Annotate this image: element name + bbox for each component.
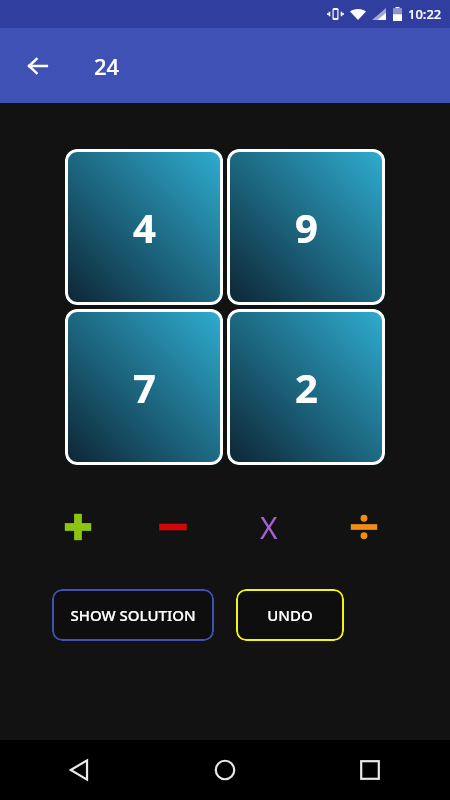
button[interactable]: Minus: [147, 501, 199, 553]
staticText: 10:22: [408, 5, 442, 23]
button[interactable]: Plus: [52, 501, 104, 553]
button[interactable]: Back: [14, 42, 62, 90]
button[interactable]: UNDO: [236, 589, 344, 641]
staticText: UNDO: [267, 605, 313, 625]
button[interactable]: 7: [65, 309, 223, 465]
staticText: SHOW SOLUTION: [70, 605, 196, 625]
button[interactable]: Recent apps: [346, 746, 394, 794]
staticText: 2: [295, 360, 318, 414]
button[interactable]: 4: [65, 149, 223, 305]
staticText: 24: [94, 51, 120, 81]
button[interactable]: 9: [227, 149, 385, 305]
button[interactable]: 2: [227, 309, 385, 465]
button[interactable]: Home: [201, 746, 249, 794]
staticText: 9: [295, 200, 318, 254]
staticText: X: [260, 507, 278, 548]
staticText: 7: [133, 360, 156, 414]
staticText: 4: [133, 200, 156, 254]
button[interactable]: Multiply: [243, 501, 295, 553]
button[interactable]: Back: [56, 746, 104, 794]
button[interactable]: SHOW SOLUTION: [52, 589, 214, 641]
button[interactable]: Divide: [338, 501, 390, 553]
